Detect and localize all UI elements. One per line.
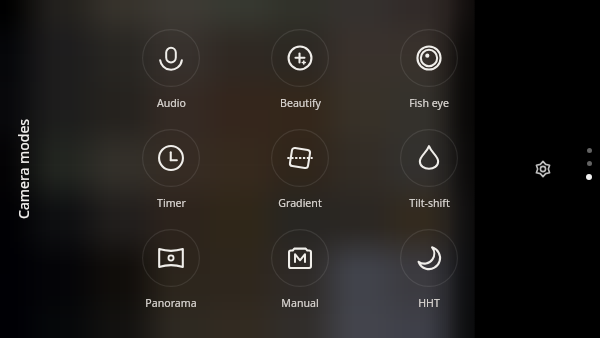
staticText: Audio	[157, 96, 186, 110]
button[interactable]: Beautify	[238, 29, 362, 113]
button[interactable]: Manual	[238, 229, 362, 313]
button[interactable]: Settings	[529, 155, 557, 183]
staticText: Camera modes	[14, 118, 33, 219]
staticText: HHT	[418, 296, 440, 310]
button[interactable]: Gradient	[238, 129, 362, 213]
staticText: Tilt-shift	[409, 196, 450, 210]
staticText: Fish eye	[409, 96, 449, 110]
button[interactable]: Audio	[109, 29, 233, 113]
staticText: Beautify	[280, 96, 321, 110]
staticText: Timer	[157, 196, 186, 210]
button[interactable]: Tilt-shift	[367, 129, 491, 213]
button[interactable]: Timer	[109, 129, 233, 213]
button[interactable]: Fish eye	[367, 29, 491, 113]
staticText: Gradient	[278, 196, 322, 210]
staticText: Panorama	[145, 296, 197, 310]
staticText: Manual	[281, 296, 319, 310]
button[interactable]: Panorama	[109, 229, 233, 313]
button[interactable]: HHT	[367, 229, 491, 313]
